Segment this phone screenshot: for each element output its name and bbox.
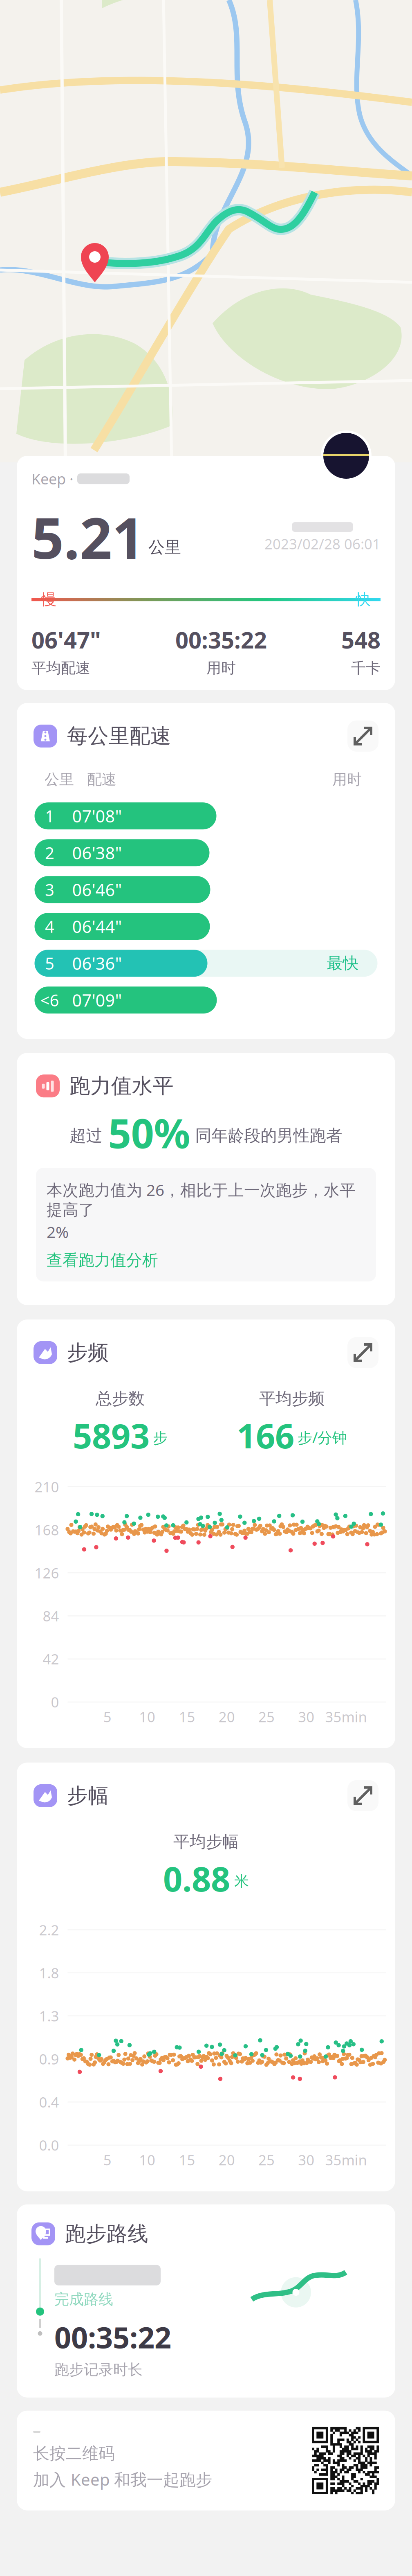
- staticText: 84: [43, 1606, 59, 1625]
- staticText: 2: [45, 842, 54, 864]
- staticText: 快: [356, 590, 371, 609]
- staticText: 2023/02/28 06:01: [264, 534, 381, 553]
- button[interactable]: Expand chart: [347, 721, 378, 752]
- staticText: 米: [234, 1872, 249, 1890]
- button[interactable]: Expand chart: [347, 1780, 378, 1811]
- staticText: 25: [258, 1707, 275, 1726]
- staticText: 4: [45, 916, 54, 937]
- staticText: 0.0: [39, 2136, 59, 2154]
- staticText: 15: [179, 2150, 195, 2169]
- staticText: 42: [43, 1650, 59, 1668]
- staticText: 548: [341, 624, 381, 655]
- staticText: 210: [35, 1477, 59, 1496]
- staticText: 1.8: [39, 1963, 59, 1982]
- staticText: 07'09": [72, 989, 122, 1011]
- staticText: 5.21: [31, 499, 144, 574]
- staticText: 步幅: [67, 1783, 109, 1808]
- staticText: 跑步记录时长: [54, 2361, 143, 2379]
- staticText: 用时: [332, 770, 362, 789]
- staticText: 平均步频: [259, 1389, 325, 1409]
- staticText: 5: [103, 2150, 112, 2169]
- staticText: 35min: [325, 2150, 367, 2169]
- staticText: 完成路线: [54, 2290, 113, 2308]
- staticText: 公里: [45, 770, 74, 789]
- staticText: 168: [35, 1520, 59, 1539]
- staticText: 10: [139, 1707, 155, 1726]
- staticText: 1.3: [39, 2007, 59, 2025]
- staticText: 5893: [73, 1413, 150, 1458]
- staticText: 00:35:22: [54, 2317, 171, 2356]
- staticText: <6: [40, 989, 59, 1011]
- button[interactable]: Expand chart: [347, 1337, 378, 1368]
- staticText: 07'08": [72, 805, 122, 827]
- staticText: 20: [219, 1707, 235, 1726]
- staticText: 慢: [41, 590, 56, 609]
- staticText: 0.88: [163, 1856, 230, 1901]
- staticText: 5: [103, 1707, 112, 1726]
- staticText: 35min: [325, 1707, 367, 1726]
- staticText: 30: [298, 2150, 314, 2169]
- staticText: 2%: [47, 1221, 69, 1242]
- staticText: 0.4: [39, 2093, 59, 2111]
- staticText: 06'36": [72, 952, 122, 974]
- staticText: 30: [298, 1707, 314, 1726]
- staticText: 超过: [70, 1126, 102, 1146]
- staticText: 总步数: [96, 1389, 145, 1409]
- staticText: 本次跑力值为 26，相比于上一次跑步，水平提高了: [47, 1179, 356, 1220]
- staticText: 06'46": [72, 878, 122, 901]
- staticText: 00:35:22: [175, 624, 267, 655]
- staticText: 10: [139, 2150, 155, 2169]
- staticText: 最快: [327, 954, 359, 973]
- staticText: 步: [153, 1429, 168, 1447]
- staticText: 06'44": [72, 915, 122, 938]
- staticText: 公里: [148, 537, 181, 557]
- staticText: 配速: [87, 770, 116, 789]
- staticText: 平均步幅: [173, 1832, 239, 1852]
- staticText: 跑步路线: [65, 2221, 148, 2247]
- staticText: 加入 Keep 和我一起跑步: [33, 2468, 212, 2490]
- staticText: 步/分钟: [298, 1428, 347, 1447]
- staticText: 3: [45, 879, 54, 900]
- staticText: 25: [258, 2150, 275, 2169]
- button[interactable]: 查看跑力值分析: [47, 1251, 158, 1270]
- staticText: 06'47": [31, 624, 101, 655]
- staticText: 平均配速: [31, 659, 90, 677]
- staticText: 06'38": [72, 842, 122, 864]
- staticText: 166: [237, 1413, 294, 1458]
- staticText: 15: [179, 1707, 195, 1726]
- staticText: 1: [45, 805, 54, 827]
- staticText: 20: [219, 2150, 235, 2169]
- staticText: 跑力值水平: [69, 1073, 174, 1099]
- staticText: 步频: [67, 1340, 109, 1365]
- staticText: 0: [51, 1693, 59, 1711]
- staticText: 5: [45, 952, 54, 974]
- staticText: 2.2: [39, 1920, 59, 1939]
- staticText: Keep ·: [31, 469, 77, 489]
- staticText: 查看跑力值分析: [47, 1251, 158, 1270]
- staticText: 长按二维码: [33, 2443, 115, 2464]
- staticText: 0.9: [39, 2050, 59, 2068]
- staticText: 126: [35, 1563, 59, 1582]
- staticText: 50%: [108, 1106, 190, 1159]
- staticText: 千卡: [351, 659, 381, 677]
- staticText: 每公里配速: [67, 723, 171, 749]
- staticText: 同年龄段的男性跑者: [195, 1126, 342, 1146]
- staticText: 用时: [206, 659, 236, 677]
